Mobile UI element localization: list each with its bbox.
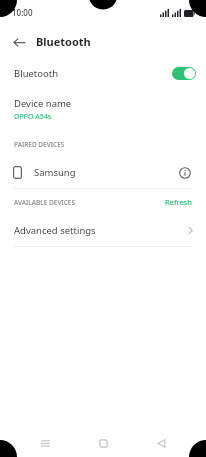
button[interactable]: Device name (0, 89, 206, 131)
staticText: Bluetooth (36, 34, 91, 49)
staticText: PAIRED DEVICES (14, 140, 65, 149)
button[interactable]: Back (148, 430, 174, 456)
staticText: Device name (14, 97, 72, 110)
button[interactable]: Advanced settings (0, 215, 206, 246)
staticText: Bluetooth (14, 67, 59, 80)
staticText: OPPO A54s (14, 112, 52, 122)
staticText: Advanced settings (14, 224, 96, 237)
button[interactable]: Samsung (0, 157, 206, 188)
button[interactable]: Back (6, 29, 32, 55)
button[interactable]: Device info (175, 163, 195, 183)
staticText: Samsung (34, 166, 76, 179)
staticText: AVAILABLE DEVICES (14, 198, 76, 207)
staticText: 10:00 (12, 7, 33, 18)
button[interactable]: Refresh (163, 195, 194, 209)
button[interactable]: Bluetooth on (172, 67, 196, 80)
button[interactable]: Recent apps (32, 430, 58, 456)
button[interactable]: Home (90, 430, 116, 456)
staticText: Refresh (165, 197, 192, 207)
button[interactable]: Bluetooth (0, 58, 206, 89)
